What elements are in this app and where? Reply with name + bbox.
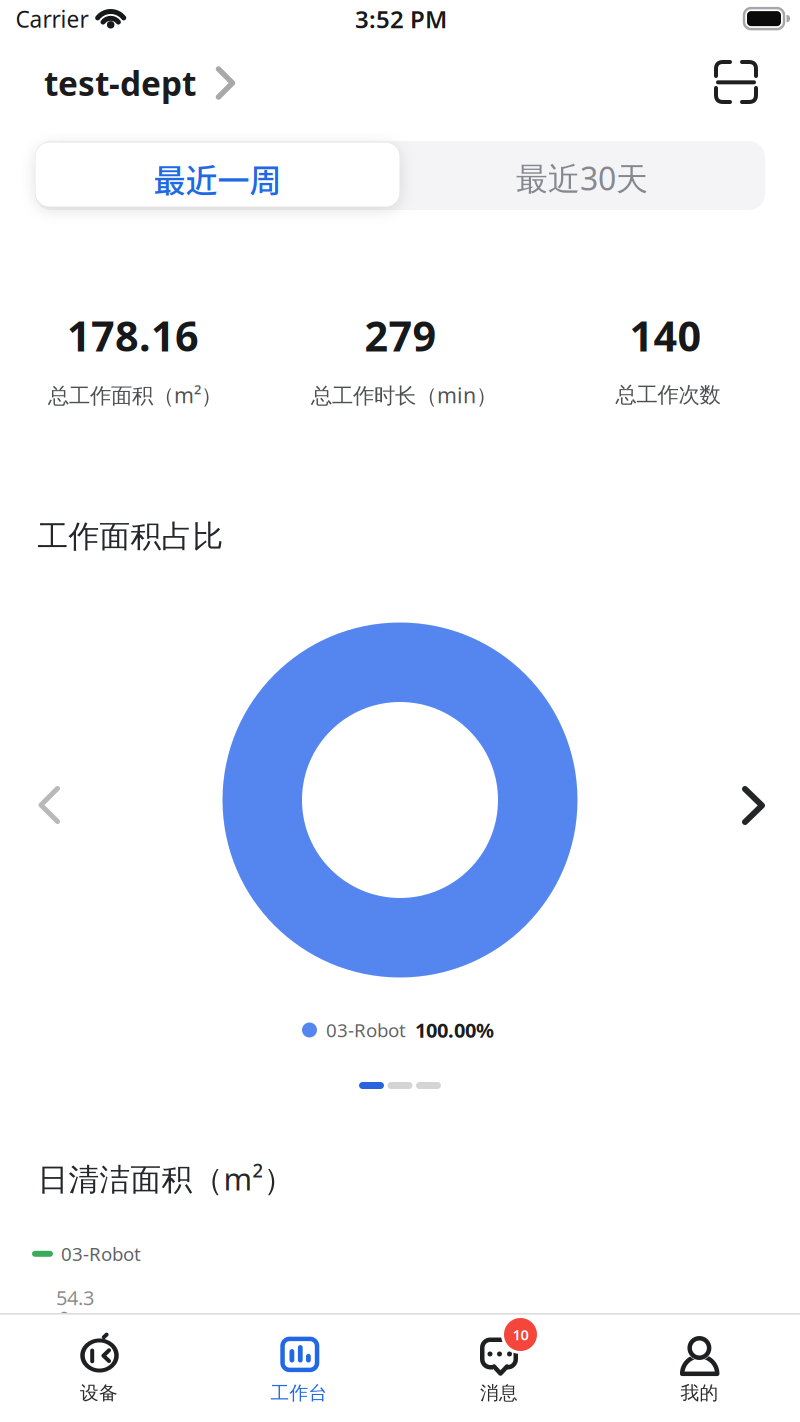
button[interactable]: 我的	[599, 1314, 799, 1422]
staticText: Carrier	[15, 4, 88, 34]
button[interactable]: Next chart	[741, 785, 765, 825]
staticText: 总工作次数	[615, 382, 720, 408]
staticText: 总工作面积（m²）	[48, 381, 222, 409]
button[interactable]: 最近30天	[417, 143, 747, 207]
button[interactable]: Previous chart	[37, 785, 61, 825]
staticText: 我的	[680, 1381, 718, 1404]
staticText: 工作台	[270, 1381, 327, 1404]
staticText: 日清洁面积（m²）	[37, 1158, 294, 1199]
button[interactable]: test-dept	[44, 61, 235, 105]
staticText: 178.16	[67, 308, 199, 363]
button[interactable]: 最近一周	[35, 143, 399, 207]
staticText: 3:52 PM	[355, 3, 447, 35]
button[interactable]: 工作台	[199, 1314, 399, 1422]
staticText: 设备	[80, 1381, 118, 1404]
staticText: 0	[58, 1305, 69, 1331]
staticText: 100.00%	[415, 1017, 494, 1043]
staticText: 消息	[480, 1381, 518, 1404]
staticText: 最近一周	[153, 155, 281, 201]
button[interactable]: Scan	[708, 54, 764, 110]
staticText: 54.3	[56, 1284, 94, 1311]
button[interactable]: 设备	[0, 1314, 199, 1422]
staticText: 10	[512, 1325, 528, 1344]
staticText: 03-Robot	[326, 1018, 406, 1042]
staticText: 279	[364, 308, 436, 363]
staticText: 03-Robot	[61, 1241, 141, 1266]
button[interactable]: 10	[399, 1314, 599, 1422]
staticText: test-dept	[44, 61, 196, 105]
staticText: 总工作时长（min）	[311, 381, 497, 409]
staticText: 工作面积占比	[37, 518, 223, 555]
staticText: 140	[629, 308, 701, 363]
staticText: 最近30天	[516, 157, 648, 199]
